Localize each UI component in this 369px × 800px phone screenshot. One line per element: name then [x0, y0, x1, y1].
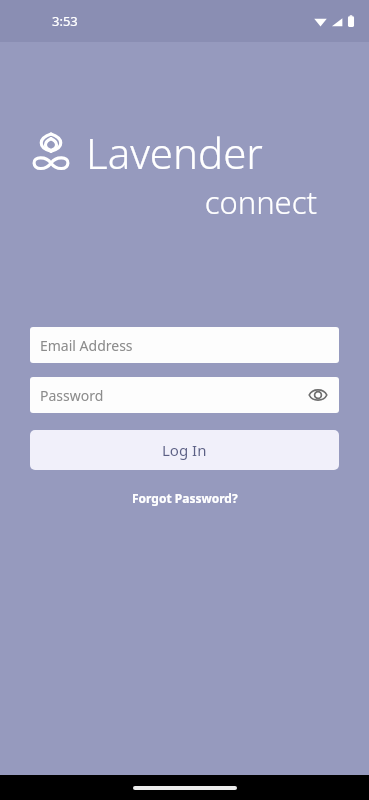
staticText: Forgot Password?: [132, 490, 238, 506]
staticText: Password: [40, 386, 104, 405]
button[interactable]: Email Address: [30, 327, 339, 363]
button[interactable]: Password: [30, 377, 339, 413]
staticText: Lavender: [86, 124, 263, 181]
staticText: connect: [30, 181, 317, 223]
staticText: Log In: [162, 440, 207, 460]
staticText: 3:53: [52, 12, 78, 30]
button[interactable]: Forgot Password?: [30, 486, 339, 510]
button[interactable]: Log In: [30, 430, 339, 470]
button[interactable]: Show password: [305, 382, 331, 408]
staticText: Email Address: [40, 336, 133, 355]
